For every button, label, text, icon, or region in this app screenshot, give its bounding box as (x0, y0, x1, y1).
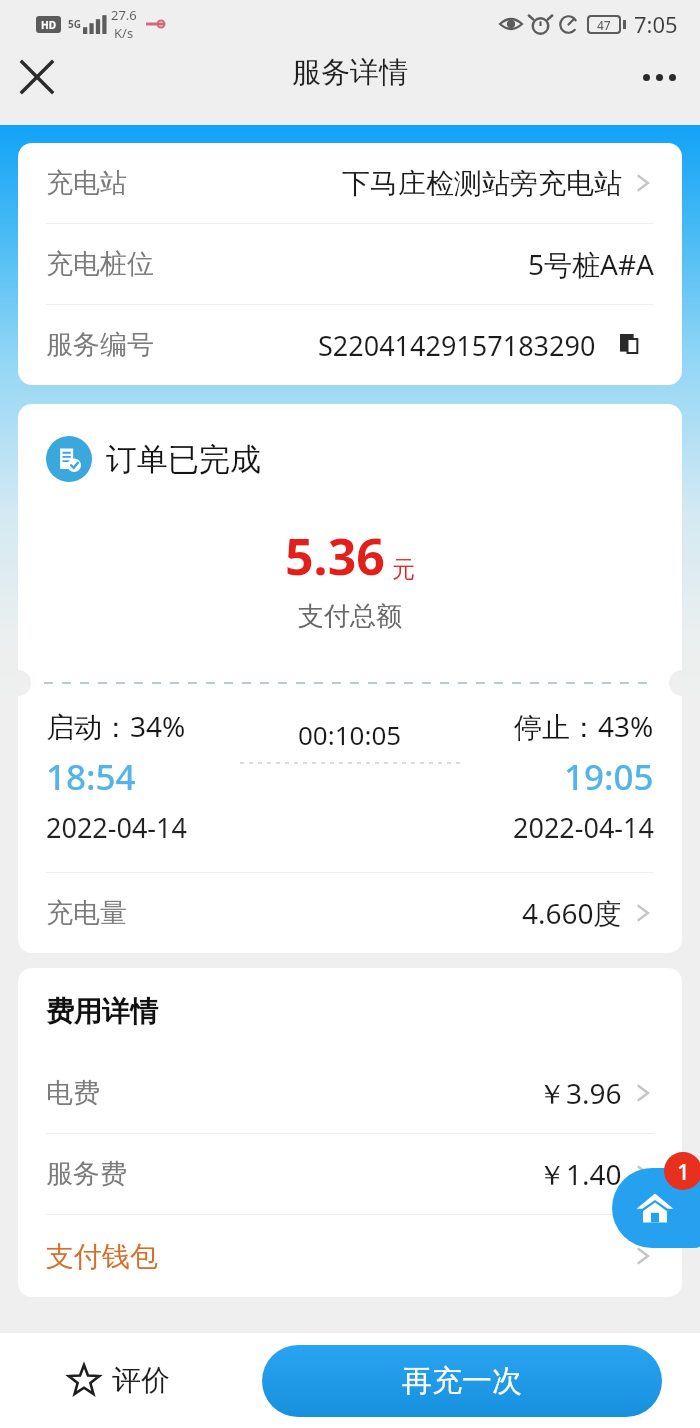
staticText: 5号桩A#A (528, 245, 654, 283)
staticText: 元 (392, 555, 415, 584)
staticText: 支付钱包 (46, 1239, 158, 1274)
button[interactable]: 支付钱包 (46, 1215, 654, 1297)
staticText: 服务编号 (46, 328, 154, 362)
button[interactable]: More options (630, 48, 688, 106)
staticText: 1 (677, 1156, 690, 1186)
button[interactable]: Copy service number (608, 322, 654, 368)
button[interactable]: 服务编号 (46, 305, 654, 385)
button[interactable]: Home (612, 1168, 700, 1248)
button[interactable]: 服务费 (46, 1134, 654, 1214)
staticText: 电费 (46, 1076, 100, 1110)
staticText: 下马庄检测站旁充电站 (342, 166, 622, 201)
staticText: 18:54 (46, 753, 136, 801)
staticText: ￥3.96 (538, 1074, 622, 1112)
button[interactable]: 评价 (68, 1333, 170, 1428)
staticText: K/s (114, 24, 134, 42)
staticText: 4.660度 (522, 894, 622, 932)
staticText: 订单已完成 (106, 440, 261, 479)
staticText: 停止：43% (514, 707, 654, 745)
staticText: HD (41, 18, 56, 32)
staticText: 支付总额 (46, 600, 654, 633)
staticText: 19:05 (564, 753, 654, 801)
staticText: 充电桩位 (46, 247, 154, 281)
staticText: 00:10:05 (298, 717, 402, 752)
button[interactable]: 充电桩位 (46, 224, 654, 304)
staticText: 启动：34% (46, 707, 186, 745)
button[interactable]: 电费 (46, 1053, 654, 1133)
staticText: 5G (68, 17, 81, 31)
staticText: 2022-04-14 (513, 809, 654, 846)
staticText: 5.36 (285, 522, 385, 590)
staticText: S22041429157183290 (318, 327, 596, 364)
staticText: 评价 (112, 1362, 170, 1399)
staticText: 服务详情 (292, 54, 408, 91)
staticText: 服务费 (46, 1157, 127, 1191)
staticText: 充电站 (46, 166, 127, 200)
staticText: 2022-04-14 (46, 809, 187, 846)
staticText: 47 (597, 17, 611, 32)
staticText: 7:05 (634, 9, 678, 39)
staticText: 再充一次 (402, 1362, 522, 1400)
staticText: 费用详情 (46, 994, 158, 1029)
button[interactable]: Close (8, 48, 66, 106)
staticText: ￥1.40 (538, 1155, 622, 1193)
button[interactable]: 充电量 (46, 873, 654, 953)
button[interactable]: 再充一次 (262, 1345, 662, 1417)
staticText: 27.6 (111, 6, 137, 24)
staticText: 充电量 (46, 896, 127, 930)
button[interactable]: 充电站 (46, 143, 654, 223)
